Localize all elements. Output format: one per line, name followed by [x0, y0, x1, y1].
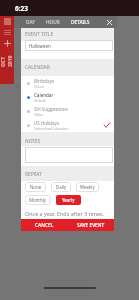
staticText: HOUR: [46, 19, 60, 26]
staticText: Default: [34, 98, 46, 103]
button[interactable]: DAY: [24, 17, 37, 28]
button[interactable]: CANCEL: [21, 219, 67, 231]
staticText: SAVE EVENT: [77, 222, 105, 229]
staticText: DETAILS: [71, 19, 90, 26]
staticText: CANCEL: [35, 222, 54, 229]
staticText: Calendar: [34, 92, 54, 98]
button[interactable]: Birthdays: [21, 76, 114, 90]
button[interactable]: None: [25, 182, 46, 192]
staticText: OCT 2019: [0, 53, 14, 67]
staticText: Once a year. Ends after 5 times.: [25, 210, 105, 217]
staticText: Daily: [56, 184, 67, 190]
staticText: ALL DAY: [16, 84, 32, 90]
staticText: Other: [34, 112, 44, 117]
button[interactable]: HOUR: [44, 17, 62, 28]
staticText: Birthdays: [34, 78, 55, 84]
staticText: Siri Suggestions: [34, 106, 68, 112]
staticText: 6:23: [15, 4, 28, 13]
staticText: CALENDAR: [25, 64, 50, 71]
button[interactable]: Monthly: [25, 195, 51, 205]
staticText: Monthly: [29, 197, 47, 203]
staticText: Weekly: [80, 184, 95, 190]
button[interactable]: SAVE EVENT: [67, 219, 114, 231]
staticText: NOTES: [25, 138, 41, 145]
staticText: Yearly: [62, 197, 75, 203]
staticText: None: [30, 184, 42, 190]
staticText: REPEAT: [25, 171, 42, 178]
button[interactable]: Halloween: [25, 40, 113, 51]
button[interactable]: Weekly: [76, 182, 99, 192]
button[interactable]: Daily: [51, 182, 71, 192]
staticText: Halloween: [29, 43, 51, 49]
staticText: DAY: [26, 19, 35, 26]
staticText: Subscribed Calendars: [34, 126, 69, 131]
button[interactable]: US Holidays: [21, 118, 114, 132]
button[interactable]: DETAILS: [69, 17, 92, 28]
button[interactable]: Yearly: [56, 195, 81, 205]
button[interactable]: [25, 147, 113, 163]
staticText: Chiara: [34, 84, 45, 89]
button[interactable]: Siri Suggestions: [21, 104, 114, 118]
button[interactable]: Calendar: [21, 90, 114, 104]
button[interactable]: Close: [104, 17, 114, 27]
staticText: EVENT TITLE: [25, 31, 54, 38]
staticText: US Holidays: [34, 120, 60, 126]
